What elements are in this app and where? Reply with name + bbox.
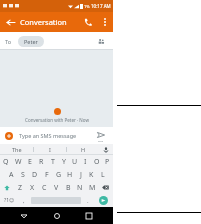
button[interactable]: Delete [98,181,113,194]
button[interactable]: S [17,168,29,181]
button[interactable]: Q [0,155,12,168]
staticText: M [89,183,96,193]
button[interactable]: O [91,155,102,168]
button[interactable]: I [34,144,66,155]
staticText: , [23,197,25,205]
staticText: D [32,170,38,180]
staticText: X [30,183,35,193]
button[interactable]: U [69,155,80,168]
staticText: Type an SMS message [19,132,77,139]
staticText: I [49,146,51,153]
staticText: J [80,170,82,180]
button[interactable]: Back [0,12,20,32]
button[interactable]: E [24,155,36,168]
staticText: E [28,157,32,167]
button[interactable]: A [5,168,17,181]
button[interactable]: W [12,155,24,168]
button[interactable]: D [29,168,41,181]
staticText: . [87,197,89,205]
button[interactable]: . [82,194,94,207]
staticText: SMS [98,139,104,142]
staticText: C [42,183,47,193]
button[interactable]: Home [49,208,65,224]
staticText: P [105,157,110,167]
staticText: Conversation with Peter · Now [25,117,89,123]
button[interactable]: J [75,168,86,181]
staticText: To [5,38,12,45]
staticText: I [84,157,87,167]
staticText: F [45,170,49,180]
staticText: Conversation [20,17,79,27]
button[interactable]: R [36,155,47,168]
staticText: Q [3,157,9,167]
button[interactable]: T [47,155,58,168]
staticText: U [72,157,78,167]
button[interactable]: G [53,168,64,181]
staticText: Z [18,183,23,193]
button[interactable]: Shift [0,181,14,194]
button[interactable]: Add recipient [94,34,108,48]
staticText: S [21,170,25,180]
staticText: Peter [24,38,38,45]
button[interactable]: Recent apps [81,208,97,224]
staticText: V [54,183,59,193]
button[interactable]: More options [97,14,113,30]
button[interactable]: I [80,155,91,168]
button[interactable]: B [62,181,74,194]
button[interactable]: , [18,194,30,207]
button[interactable]: H [64,168,75,181]
staticText: 10:17 AM [91,3,111,9]
staticText: R [39,157,44,167]
button[interactable]: V [50,181,62,194]
staticText: T [51,157,55,167]
staticText: B [66,183,71,193]
button[interactable]: L [97,168,108,181]
button[interactable]: C [38,181,50,194]
staticText: N [77,183,83,193]
button[interactable]: Type an SMS message [19,132,94,139]
button[interactable]: Attach [5,132,13,140]
button[interactable]: The [0,144,33,155]
button[interactable]: P [102,155,113,168]
button[interactable]: Peter [18,36,44,47]
button[interactable]: Call [79,13,97,31]
button[interactable]: H [67,144,99,155]
button[interactable]: N [74,181,86,194]
staticText: H [81,146,86,153]
button[interactable]: M [86,181,98,194]
staticText: G [56,170,62,180]
staticText: The [12,146,22,153]
button[interactable]: Send message [94,194,113,207]
staticText: W [15,157,22,167]
button[interactable]: Send [94,129,108,143]
staticText: A [9,170,14,180]
staticText: O [94,157,100,167]
staticText: L [101,170,105,180]
staticText: K [89,170,94,180]
button[interactable]: Symbols [0,194,18,207]
staticText: ?1☺ [4,197,15,204]
staticText: H [67,170,73,180]
staticText: 1% [84,4,90,9]
button[interactable]: X [26,181,38,194]
button[interactable]: Y [58,155,69,168]
button[interactable]: Z [14,181,26,194]
button[interactable]: Back [16,208,32,224]
button[interactable]: K [86,168,97,181]
button[interactable]: Voice input [99,144,113,155]
button[interactable]: F [41,168,53,181]
staticText: Y [62,157,66,167]
